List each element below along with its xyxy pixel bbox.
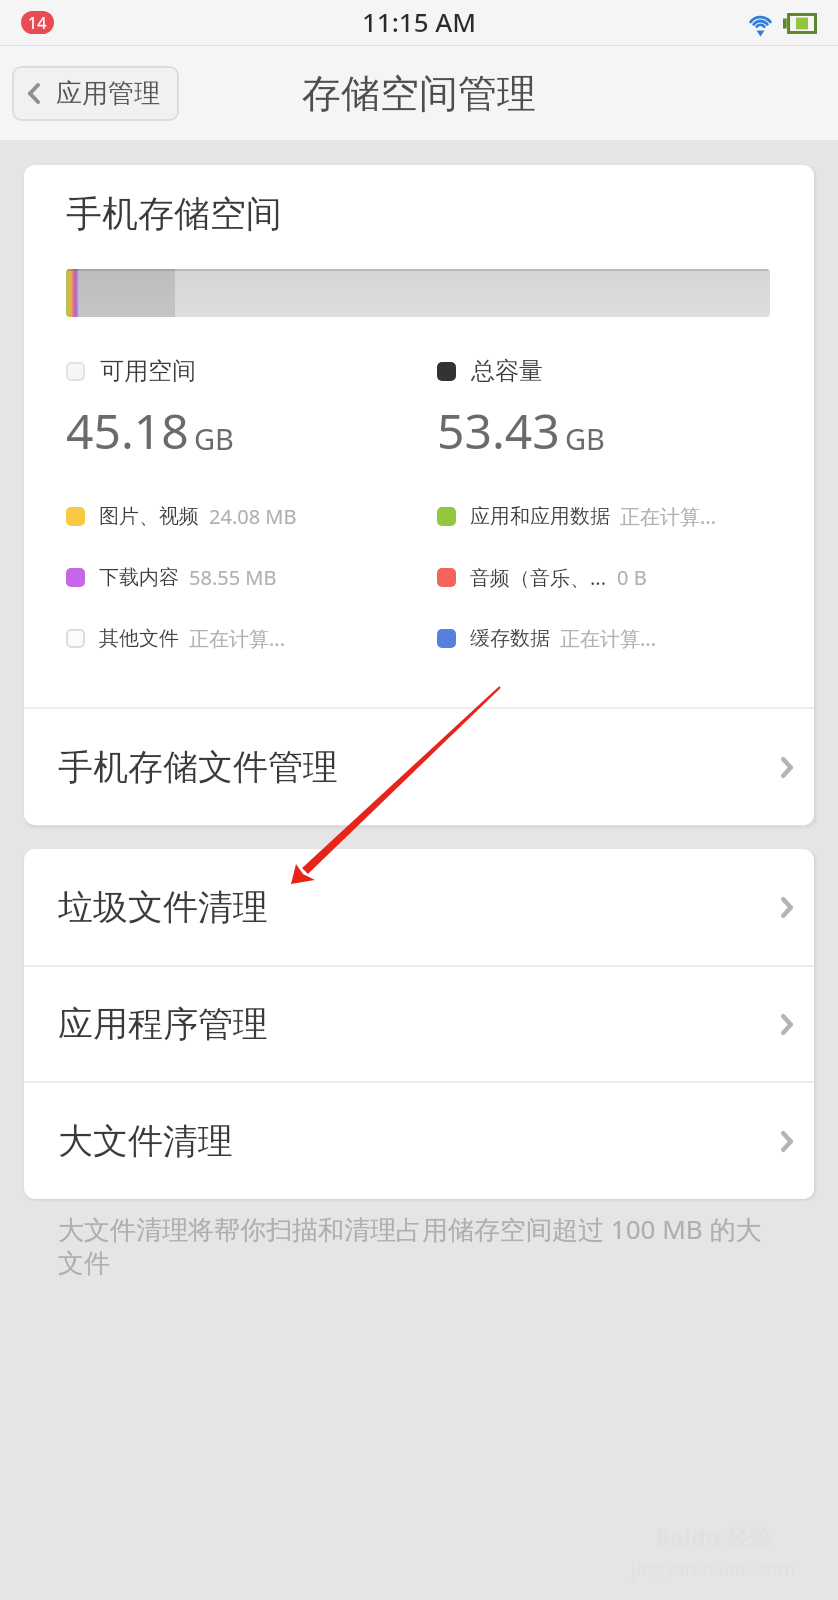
staticText: 应用程序管理 [58,1002,268,1046]
staticText: 正在计算... [189,625,286,652]
staticText: 11:15 AM [362,4,477,39]
staticText: 存储空间管理 [302,69,536,118]
staticText: 正在计算... [620,503,717,530]
staticText: 手机存储空间 [66,191,282,236]
staticText: 大文件清理 [58,1119,233,1163]
staticText: 大文件清理将帮你扫描和清理占用储存空间超过 100 MB 的大文件 [58,1211,778,1280]
button[interactable]: 手机存储文件管理 [24,709,814,825]
staticText: 手机存储文件管理 [58,745,338,789]
staticText: 音频（音乐、... [470,564,607,591]
staticText: GB [194,419,234,458]
staticText: 0 B [617,564,647,591]
staticText: 应用和应用数据 [470,504,610,529]
button[interactable]: 垃圾文件清理 [24,849,814,965]
staticText: 图片、视频 [99,504,199,529]
button[interactable]: 大文件清理 [24,1083,814,1199]
staticText: GB [565,419,605,458]
staticText: 应用管理 [56,77,160,110]
staticText: 垃圾文件清理 [58,885,268,929]
button[interactable]: 应用管理 [12,66,179,121]
staticText: 14 [28,12,47,34]
staticText: 可用空间 [100,356,196,386]
staticText: 24.08 MB [209,503,297,530]
staticText: 45.18 [66,398,189,463]
staticText: 58.55 MB [189,564,277,591]
staticText: 正在计算... [560,625,657,652]
staticText: 缓存数据 [470,626,550,651]
staticText: 总容量 [471,356,543,386]
staticText: 下载内容 [99,565,179,590]
button[interactable]: 应用程序管理 [24,967,814,1081]
staticText: 其他文件 [99,626,179,651]
staticText: 53.43 [437,398,560,463]
